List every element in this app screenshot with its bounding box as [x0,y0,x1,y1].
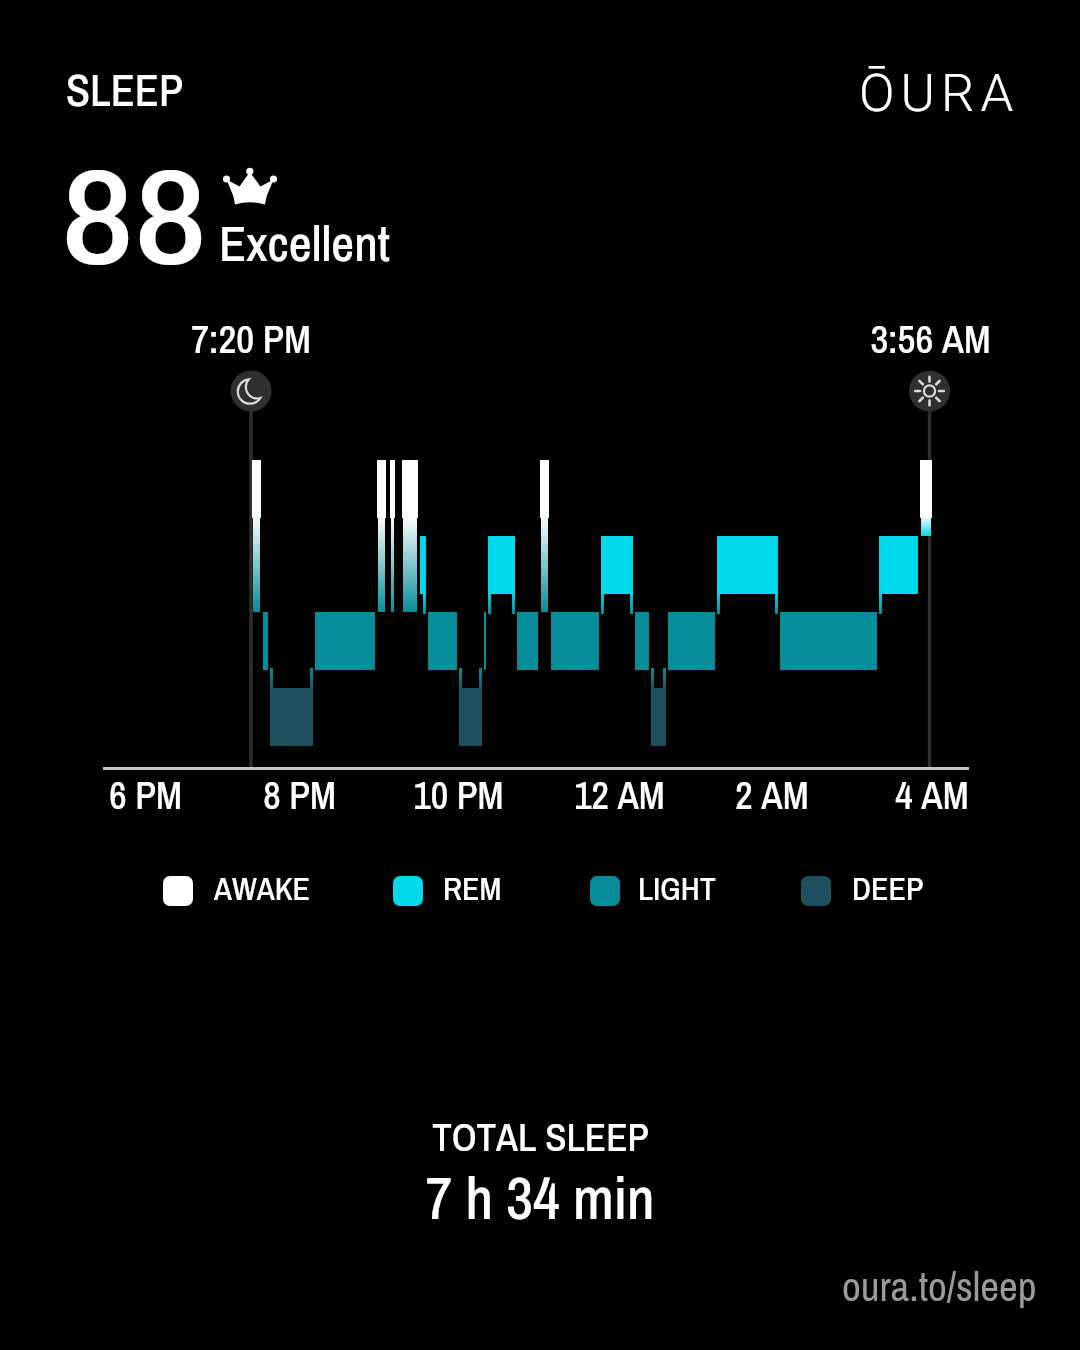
staticText: Excellent [219,209,390,276]
staticText: 6 PM [109,770,182,821]
staticText: 8 PM [263,770,336,821]
staticText: 4 AM [895,770,969,821]
staticText: LIGHT [638,867,716,910]
staticText: AWAKE [214,867,311,910]
staticText: oura.to/sleep [842,1259,1037,1314]
staticText: 2 AM [735,770,809,821]
staticText: SLEEP [66,60,183,119]
staticText: TOTAL SLEEP [432,1111,649,1164]
staticText: 7 h 34 min [425,1158,655,1237]
staticText: REM [443,867,502,910]
staticText: 7:20 PM [191,313,311,366]
staticText: 12 AM [574,770,665,821]
staticText: 10 PM [413,770,504,821]
staticText: 3:56 AM [870,313,991,366]
staticText: DEEP [852,867,924,910]
staticText: 88 [61,124,208,304]
staticText: ŌURA [859,62,1020,124]
